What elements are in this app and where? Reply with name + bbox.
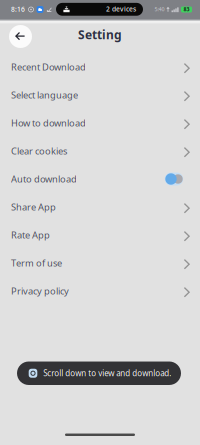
button[interactable]: Scroll down to view and download. xyxy=(17,361,181,385)
staticText: Term of use xyxy=(11,257,62,269)
staticText: 83 xyxy=(183,6,189,13)
staticText: Recent Download xyxy=(11,61,86,73)
button[interactable]: Back xyxy=(9,25,32,48)
button[interactable]: Rate App xyxy=(0,221,200,249)
staticText: 5:40 xyxy=(154,6,164,13)
staticText: Share App xyxy=(11,201,56,213)
button[interactable]: Select language xyxy=(0,81,200,109)
staticText: Scroll down to view and download. xyxy=(43,368,171,378)
button[interactable]: Clear cookies xyxy=(0,137,200,165)
staticText: Auto download xyxy=(11,173,77,185)
button[interactable]: Recent Download xyxy=(0,53,200,81)
staticText: How to download xyxy=(11,117,86,129)
staticText: Setting xyxy=(78,26,122,42)
staticText: Select language xyxy=(11,89,78,101)
button[interactable]: Privacy policy xyxy=(0,277,200,305)
staticText: 2 devices xyxy=(106,5,136,13)
staticText: Privacy policy xyxy=(11,285,69,297)
button[interactable]: Term of use xyxy=(0,249,200,277)
button[interactable]: How to download xyxy=(0,109,200,137)
staticText: 8:16 xyxy=(11,5,25,14)
staticText: Rate App xyxy=(11,229,50,241)
button[interactable]: Share App xyxy=(0,193,200,221)
button[interactable]: Auto download xyxy=(0,165,200,193)
staticText: Clear cookies xyxy=(11,145,67,157)
